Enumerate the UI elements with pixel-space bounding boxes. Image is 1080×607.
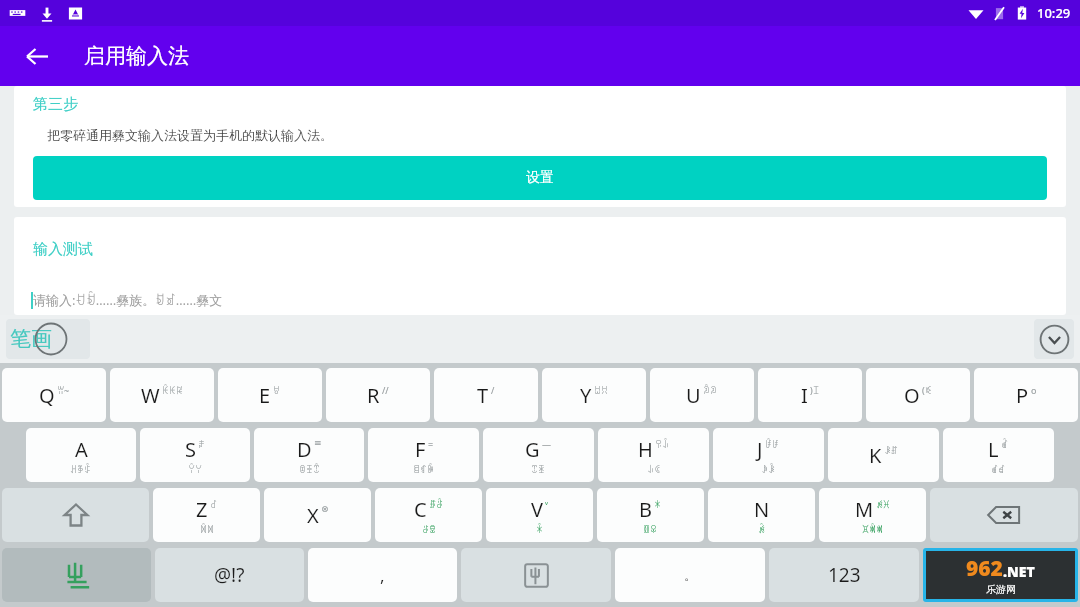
- staticText: ꀢꀣ: [703, 384, 718, 396]
- staticText: R: [367, 382, 380, 409]
- staticText: 第三步: [33, 95, 78, 114]
- staticText: ꀶ: [1001, 438, 1009, 450]
- button[interactable]: @!?: [155, 548, 304, 602]
- button[interactable]: Yi input method: [2, 548, 151, 602]
- button[interactable]: A: [26, 428, 136, 482]
- button[interactable]: X: [264, 488, 371, 542]
- button[interactable]: E: [218, 368, 322, 422]
- staticText: X: [307, 502, 319, 529]
- button[interactable]: Y: [542, 368, 646, 422]
- staticText: ꀷꀸ: [991, 463, 1006, 475]
- staticText: ꁘ: [654, 498, 662, 510]
- button[interactable]: ,: [308, 548, 457, 602]
- staticText: ꌧ: [198, 438, 206, 450]
- staticText: ꁐ: [210, 498, 218, 510]
- staticText: K: [869, 442, 882, 469]
- staticText: ꁜꁝ: [876, 498, 891, 510]
- staticText: ꁕꁖ: [422, 523, 437, 535]
- button[interactable]: C: [375, 488, 482, 542]
- staticText: ꀬꀭ: [655, 438, 670, 450]
- button[interactable]: R: [326, 368, 430, 422]
- staticText: 10:29: [1037, 4, 1071, 22]
- staticText: ꁑꁒ: [200, 523, 215, 535]
- staticText: ꌨꌩ: [188, 463, 203, 475]
- staticText: ꀞ: [273, 384, 281, 396]
- button[interactable]: K: [828, 428, 939, 482]
- staticText: Z: [196, 496, 208, 523]
- staticText: ꀪꀫ: [531, 463, 546, 475]
- staticText: 。: [684, 567, 697, 583]
- button[interactable]: D: [254, 428, 364, 482]
- button[interactable]: G: [483, 428, 594, 482]
- staticText: V: [531, 496, 543, 523]
- staticText: Q: [39, 382, 55, 409]
- staticText: 笔画: [10, 326, 52, 352]
- staticText: 把零碎通用彝文输入法设置为手机的默认输入法。: [47, 127, 333, 143]
- button[interactable]: Q: [2, 368, 106, 422]
- button[interactable]: Delete: [930, 488, 1078, 542]
- button[interactable]: S: [140, 428, 250, 482]
- staticText: 123: [828, 562, 861, 588]
- staticText: ꀧꀨꀩ: [299, 463, 321, 475]
- staticText: 乐游网: [986, 583, 1016, 596]
- staticText: ꁞꁟꁠ: [862, 523, 884, 535]
- button[interactable]: J: [713, 428, 824, 482]
- staticText: U: [686, 382, 701, 409]
- button[interactable]: T: [434, 368, 538, 422]
- staticText: /: [491, 384, 495, 396]
- staticText: M: [855, 496, 874, 523]
- staticText: ꃅꃆꃇ: [70, 463, 92, 475]
- button[interactable]: 。: [615, 548, 765, 602]
- button[interactable]: 设置: [33, 156, 1047, 200]
- button[interactable]: Z: [153, 488, 260, 542]
- staticText: L: [988, 436, 999, 463]
- staticText: ꀲꀳ: [761, 463, 776, 475]
- button[interactable]: W: [110, 368, 214, 422]
- button[interactable]: 笔画: [6, 319, 90, 359]
- button[interactable]: P: [974, 368, 1078, 422]
- staticText: ꁌꁍꁎ: [413, 463, 435, 475]
- staticText: =: [428, 438, 434, 450]
- button[interactable]: 123: [769, 548, 919, 602]
- staticText: G: [525, 436, 540, 463]
- staticText: H: [638, 436, 653, 463]
- staticText: o: [1031, 384, 1037, 396]
- staticText: ≡: [314, 438, 322, 448]
- staticText: ꁓꁔ: [429, 498, 444, 510]
- staticText: Y: [580, 382, 592, 409]
- staticText: I: [801, 382, 808, 409]
- staticText: ꁙꁚ: [643, 523, 658, 535]
- staticText: ꀰꀱ: [765, 438, 780, 450]
- button[interactable]: O: [866, 368, 970, 422]
- staticText: A: [75, 436, 88, 463]
- button[interactable]: V: [486, 488, 593, 542]
- button[interactable]: M: [819, 488, 926, 542]
- staticText: 962: [966, 554, 1003, 583]
- button[interactable]: F: [368, 428, 479, 482]
- staticText: 请输入:ꀀꀁ……彝族。ꀂꀃ……彝文: [33, 291, 223, 309]
- button[interactable]: H: [598, 428, 709, 482]
- staticText: ꀠꀡ: [594, 384, 609, 396]
- staticText: //: [382, 384, 389, 396]
- button[interactable]: N: [708, 488, 815, 542]
- staticText: C: [414, 496, 427, 523]
- button[interactable]: U: [650, 368, 754, 422]
- button[interactable]: L: [943, 428, 1054, 482]
- staticText: 输入测试: [33, 240, 93, 259]
- staticText: D: [297, 436, 312, 463]
- button[interactable]: Back: [13, 32, 61, 80]
- button[interactable]: Hide keyboard: [1034, 319, 1074, 359]
- staticText: ꁗ: [536, 523, 544, 535]
- button[interactable]: Shift: [2, 488, 149, 542]
- staticText: E: [259, 382, 271, 409]
- staticText: P: [1016, 382, 1029, 409]
- staticText: O: [904, 382, 920, 409]
- button[interactable]: I: [758, 368, 862, 422]
- staticText: ,: [380, 564, 385, 587]
- button[interactable]: Symbols: [461, 548, 611, 602]
- staticText: ꀴꀵ: [884, 444, 899, 456]
- staticText: 设置: [526, 169, 554, 187]
- staticText: ⊗: [321, 504, 329, 514]
- button[interactable]: B: [597, 488, 704, 542]
- staticText: —: [542, 438, 552, 450]
